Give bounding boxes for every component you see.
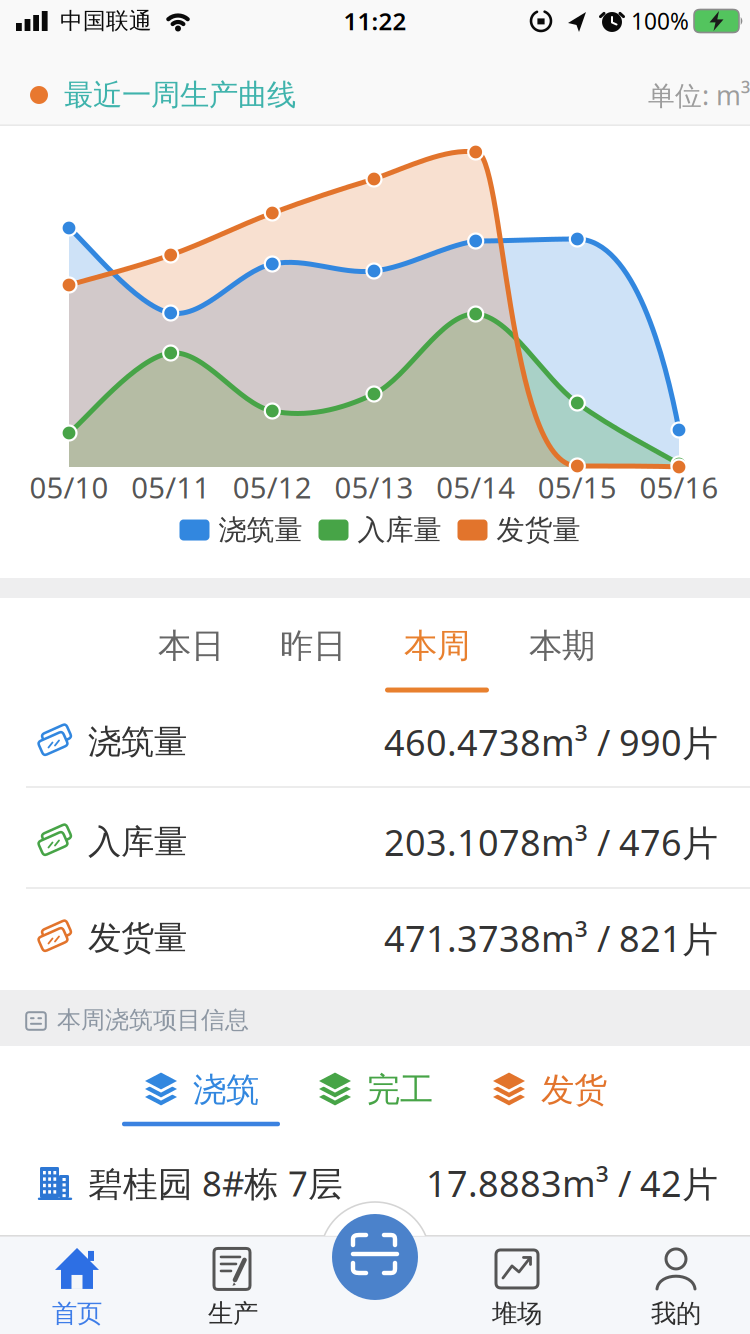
staticText: 首页 (52, 1298, 102, 1329)
staticText: 17.8883m³ / 42片 (426, 1159, 718, 1207)
staticText: 05/16 (639, 467, 718, 506)
staticText: 中国联通 (60, 7, 152, 35)
button[interactable]: 本期 (519, 617, 605, 674)
staticText: 生产 (208, 1298, 258, 1329)
button[interactable]: 昨日 (270, 617, 356, 674)
button[interactable]: 浇筑 (141, 1069, 259, 1110)
staticText: 发货量 (88, 917, 187, 958)
staticText: 堆场 (492, 1298, 542, 1329)
staticText: 471.3738m³ / 821片 (384, 914, 718, 962)
staticText: 浇筑量 (218, 513, 302, 547)
staticText: 浇筑 (193, 1069, 259, 1110)
staticText: 本周浇筑项目信息 (57, 1005, 249, 1035)
button[interactable]: 堆场 (492, 1247, 542, 1329)
staticText: 11:22 (343, 5, 406, 37)
staticText: 460.4738m³ / 990片 (384, 718, 718, 766)
staticText: 203.1078m³ / 476片 (384, 818, 718, 866)
staticText: 完工 (367, 1069, 433, 1110)
staticText: 05/15 (538, 467, 617, 506)
staticText: 本期 (529, 625, 595, 666)
button[interactable]: 本日 (148, 617, 234, 674)
staticText: 昨日 (280, 625, 346, 666)
button[interactable]: 我的 (651, 1247, 701, 1329)
button[interactable]: 扫码 (332, 1214, 418, 1300)
staticText: 发货 (541, 1069, 607, 1110)
staticText: 本日 (158, 625, 224, 666)
staticText: 最近一周生产曲线 (64, 77, 296, 113)
staticText: 05/14 (436, 467, 515, 506)
staticText: 入库量 (357, 513, 441, 547)
staticText: 碧桂园 8#栋 7层 (88, 1160, 343, 1206)
button[interactable]: 本周 (394, 617, 480, 674)
button[interactable]: 生产 (208, 1247, 258, 1329)
button[interactable]: 发货 (489, 1069, 607, 1110)
staticText: 单位: m³ (648, 77, 750, 113)
staticText: 浇筑量 (88, 721, 187, 762)
staticText: 入库量 (88, 821, 187, 862)
button[interactable]: 碧桂园 8#栋 7层 (88, 1159, 718, 1207)
button[interactable]: 首页 (52, 1247, 102, 1329)
staticText: 05/10 (29, 467, 108, 506)
staticText: 05/12 (233, 467, 312, 506)
staticText: 100% (631, 6, 689, 36)
staticText: 本周 (404, 625, 470, 666)
button[interactable]: 完工 (315, 1069, 433, 1110)
staticText: 05/13 (334, 467, 413, 506)
staticText: 我的 (651, 1298, 701, 1329)
staticText: 发货量 (496, 513, 580, 547)
staticText: 05/11 (131, 467, 210, 506)
